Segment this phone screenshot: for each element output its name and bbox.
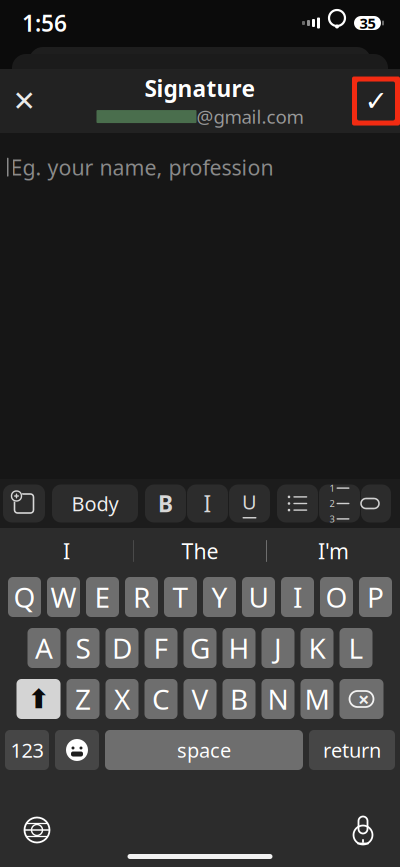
- button[interactable]: S: [66, 628, 99, 668]
- button[interactable]: Italic: [187, 484, 228, 522]
- button[interactable]: O: [320, 577, 353, 617]
- button[interactable]: B: [222, 679, 255, 719]
- button[interactable]: R: [125, 577, 158, 617]
- staticText: I: [203, 488, 211, 518]
- button[interactable]: I: [0, 531, 133, 571]
- button[interactable]: A: [27, 628, 60, 668]
- button[interactable]: V: [183, 679, 216, 719]
- button[interactable]: K: [300, 628, 333, 668]
- button[interactable]: Save signature: [348, 69, 400, 133]
- button[interactable]: M: [300, 679, 333, 719]
- staticText: C: [152, 680, 170, 718]
- staticText: 123: [10, 737, 43, 763]
- staticText: V: [191, 680, 208, 718]
- button[interactable]: Z: [66, 679, 99, 719]
- staticText: I: [63, 537, 70, 565]
- staticText: E: [94, 578, 110, 616]
- button[interactable]: D: [105, 628, 138, 668]
- button[interactable]: Underline: [229, 484, 270, 522]
- staticText: B: [230, 680, 248, 718]
- button[interactable]: I'm: [267, 531, 400, 571]
- staticText: Q: [13, 578, 35, 616]
- button[interactable]: Dictation: [337, 808, 389, 852]
- button[interactable]: I: [281, 577, 314, 617]
- staticText: H: [228, 629, 249, 667]
- button[interactable]: Numbered list: [319, 484, 360, 522]
- staticText: J: [274, 629, 282, 667]
- staticText: U: [248, 578, 268, 616]
- staticText: 1: [329, 482, 334, 494]
- button[interactable]: F: [144, 628, 177, 668]
- staticText: @gmail.com: [196, 104, 303, 129]
- button[interactable]: W: [47, 577, 80, 617]
- staticText: Y: [211, 578, 227, 616]
- staticText: N: [267, 680, 288, 718]
- staticText: T: [172, 578, 188, 616]
- staticText: O: [325, 578, 347, 616]
- button[interactable]: L: [339, 628, 372, 668]
- button[interactable]: J: [261, 628, 294, 668]
- staticText: 3: [329, 513, 334, 525]
- button[interactable]: Shift: [16, 679, 60, 719]
- staticText: L: [348, 629, 363, 667]
- button[interactable]: Q: [8, 577, 41, 617]
- button[interactable]: C: [144, 679, 177, 719]
- staticText: U: [242, 488, 257, 515]
- staticText: 1:56: [22, 8, 67, 38]
- button[interactable]: N: [261, 679, 294, 719]
- staticText: R: [133, 578, 150, 616]
- staticText: K: [308, 629, 325, 667]
- staticText: F: [153, 629, 168, 667]
- button[interactable]: P: [359, 577, 392, 617]
- staticText: X: [114, 680, 130, 718]
- button[interactable]: space: [105, 730, 303, 770]
- staticText: Eg. your name, profession: [10, 153, 273, 181]
- button[interactable]: Close: [0, 69, 52, 133]
- button[interactable]: H: [222, 628, 255, 668]
- staticText: Signature: [144, 73, 255, 103]
- staticText: ⬆: [27, 684, 49, 714]
- button[interactable]: Body: [52, 484, 138, 522]
- staticText: D: [112, 629, 132, 667]
- staticText: ✓: [364, 85, 387, 117]
- staticText: I: [293, 578, 302, 616]
- button[interactable]: Insert image: [3, 484, 45, 522]
- button[interactable]: Bulleted list: [277, 484, 318, 522]
- button[interactable]: Bold: [145, 484, 186, 522]
- staticText: ×: [358, 686, 369, 712]
- button[interactable]: E: [86, 577, 119, 617]
- staticText: S: [75, 629, 90, 667]
- button[interactable]: T: [164, 577, 197, 617]
- staticText: 2: [329, 497, 334, 510]
- button[interactable]: Delete: [339, 679, 383, 719]
- staticText: A: [35, 629, 53, 667]
- staticText: B: [158, 488, 173, 518]
- button[interactable]: Y: [203, 577, 236, 617]
- staticText: return: [323, 737, 381, 763]
- button[interactable]: X: [105, 679, 138, 719]
- staticText: P: [367, 578, 384, 616]
- button[interactable]: Emoji: [55, 730, 99, 770]
- button[interactable]: 123: [5, 730, 49, 770]
- staticText: The: [181, 537, 218, 565]
- staticText: space: [177, 737, 231, 763]
- button[interactable]: G: [183, 628, 216, 668]
- button[interactable]: Switch keyboard: [11, 808, 63, 852]
- staticText: Z: [75, 680, 91, 718]
- staticText: W: [50, 578, 76, 616]
- staticText: ✕: [12, 85, 35, 117]
- staticText: M: [304, 680, 329, 718]
- staticText: I'm: [318, 537, 349, 565]
- staticText: G: [190, 629, 210, 667]
- staticText: 35: [359, 13, 375, 33]
- button[interactable]: U: [242, 577, 275, 617]
- button[interactable]: The: [134, 531, 266, 571]
- button[interactable]: return: [309, 730, 395, 770]
- staticText: Body: [71, 490, 118, 517]
- button[interactable]: Insert link: [361, 484, 391, 522]
